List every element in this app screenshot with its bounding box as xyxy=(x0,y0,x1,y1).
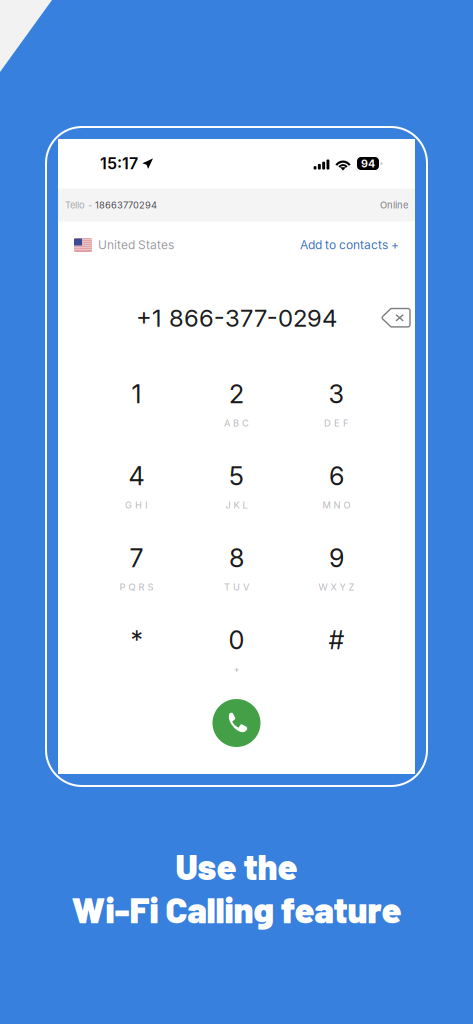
button[interactable]: 3 xyxy=(286,353,386,435)
button[interactable]: Delete xyxy=(381,307,411,328)
staticText: 3 xyxy=(328,379,344,409)
staticText: 18663770294 xyxy=(95,199,157,211)
staticText: 4 xyxy=(128,461,144,491)
staticText: M N O xyxy=(322,499,350,511)
button[interactable]: 5 xyxy=(186,435,286,517)
staticText: United States xyxy=(98,238,174,252)
button[interactable]: 4 xyxy=(86,435,186,517)
staticText: 1 xyxy=(131,379,141,409)
button[interactable]: 0 xyxy=(186,599,286,681)
staticText: 5 xyxy=(229,461,244,491)
button[interactable]: * xyxy=(86,599,186,681)
button[interactable]: 2 xyxy=(186,353,286,435)
staticText: 2 xyxy=(229,379,244,409)
button[interactable]: 1 xyxy=(86,353,186,435)
staticText: Add to contacts + xyxy=(300,238,399,252)
button[interactable]: Call xyxy=(58,695,415,751)
staticText: A B C xyxy=(224,417,249,429)
staticText: 8 xyxy=(229,543,244,573)
staticText: Tello - xyxy=(65,199,95,211)
staticText: 15:17 xyxy=(100,154,138,173)
staticText: 9 xyxy=(329,543,344,573)
staticText: 6 xyxy=(329,461,344,491)
staticText: Wi-Fi Calling feature xyxy=(71,887,401,930)
staticText: T U V xyxy=(224,581,249,593)
staticText: 0 xyxy=(228,625,244,655)
staticText: + xyxy=(233,663,239,675)
button[interactable]: Add to contacts + xyxy=(300,238,399,252)
staticText: W X Y Z xyxy=(318,581,354,593)
staticText: Online xyxy=(380,199,408,211)
button[interactable]: 6 xyxy=(286,435,386,517)
staticText: +1 866-377-0294 xyxy=(136,303,337,332)
staticText: 7 xyxy=(129,543,143,573)
staticText: G H I xyxy=(125,499,148,511)
staticText: D E F xyxy=(324,417,349,429)
button[interactable]: # xyxy=(286,599,386,681)
button[interactable]: 7 xyxy=(86,517,186,599)
button[interactable]: 9 xyxy=(286,517,386,599)
staticText: 94 xyxy=(361,157,375,170)
staticText: Use the xyxy=(175,844,297,887)
staticText: * xyxy=(130,625,142,655)
staticText: P Q R S xyxy=(119,581,153,593)
button[interactable]: 8 xyxy=(186,517,286,599)
staticText: # xyxy=(328,625,344,655)
staticText: J K L xyxy=(225,499,247,511)
